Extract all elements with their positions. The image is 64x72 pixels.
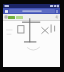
button[interactable]: Light green highlight <box>16 16 23 19</box>
button[interactable]: Search documents <box>9 9 55 13</box>
button[interactable]: Green highlight selected <box>8 16 15 19</box>
button[interactable]: Shape tool <box>4 14 8 20</box>
button[interactable]: Open navigation menu <box>4 8 9 14</box>
button[interactable]: Drawing canvas <box>3 21 60 67</box>
button[interactable]: Undo <box>55 14 59 20</box>
button[interactable]: More options <box>55 8 59 14</box>
